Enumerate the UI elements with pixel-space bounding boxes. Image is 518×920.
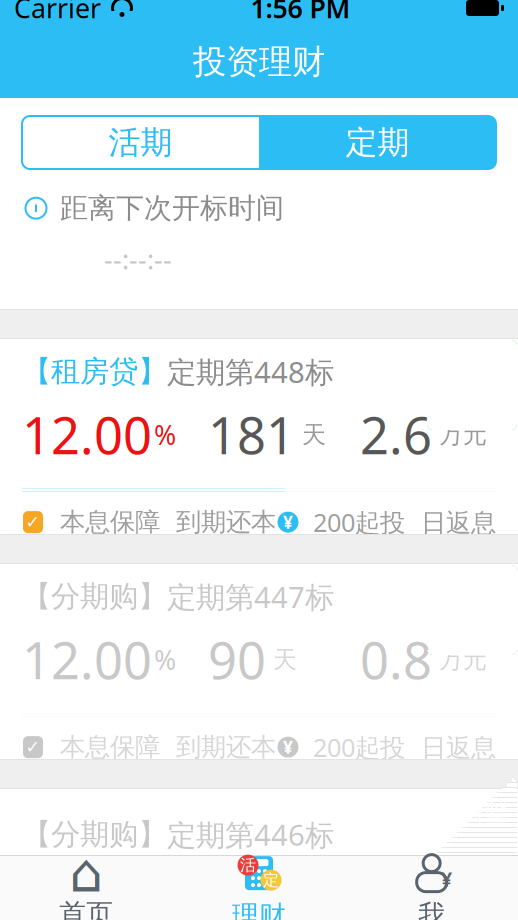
staticText: 天 bbox=[273, 645, 297, 674]
staticText: 投资理财 bbox=[193, 41, 325, 82]
staticText: ¥ bbox=[441, 866, 452, 892]
button[interactable]: 定期 bbox=[259, 116, 496, 169]
staticText: ¥ bbox=[283, 511, 293, 534]
button[interactable]: ⌂ bbox=[0, 855, 173, 920]
staticText: 2.6 bbox=[360, 401, 432, 468]
staticText: 90 bbox=[208, 626, 266, 693]
staticText: % bbox=[154, 642, 176, 677]
staticText: 距离下次开标时间 bbox=[60, 191, 284, 225]
staticText: % bbox=[154, 417, 176, 452]
staticText: ✓ bbox=[25, 737, 40, 757]
staticText: --:--:-- bbox=[104, 241, 172, 277]
staticText: 12.00 bbox=[22, 401, 152, 468]
staticText: 定期第446标 bbox=[167, 815, 334, 854]
button[interactable]: ¥ bbox=[345, 855, 518, 920]
button[interactable]: 活 bbox=[173, 855, 345, 920]
staticText: 定 bbox=[263, 870, 279, 890]
staticText: 万元 bbox=[439, 645, 487, 674]
button[interactable]: 活期 bbox=[22, 116, 259, 169]
staticText: 我 bbox=[418, 898, 445, 920]
staticText: 本息保障 到期还本 bbox=[44, 732, 276, 763]
staticText: ⌂ bbox=[69, 843, 103, 903]
staticText: 首页 bbox=[59, 897, 113, 920]
staticText: 181 bbox=[208, 401, 295, 468]
staticText: 12.00 bbox=[22, 626, 152, 693]
staticText: 【租房贷】 bbox=[22, 353, 167, 389]
staticText: 200起投 日返息 bbox=[299, 505, 496, 539]
staticText: ✓ bbox=[25, 512, 40, 532]
staticText: 定期 bbox=[345, 123, 409, 162]
button[interactable]: 【分期购】 bbox=[0, 564, 518, 759]
staticText: 活 bbox=[240, 855, 256, 875]
staticText: ¥ bbox=[283, 736, 293, 759]
staticText: Carrier bbox=[14, 0, 101, 26]
staticText: 天 bbox=[302, 420, 326, 449]
staticText: 【分期购】 bbox=[22, 816, 167, 852]
staticText: 0.8 bbox=[360, 626, 432, 693]
staticText: 定期第448标 bbox=[167, 352, 334, 391]
staticText: 1:56 PM bbox=[250, 0, 350, 26]
staticText: 活期 bbox=[108, 123, 172, 162]
button[interactable]: 【租房贷】 bbox=[0, 339, 518, 534]
staticText: 定期第447标 bbox=[167, 577, 334, 616]
staticText: 【分期购】 bbox=[22, 578, 167, 614]
button[interactable]: 【分期购】 bbox=[0, 789, 518, 855]
staticText: 理财 bbox=[232, 899, 286, 920]
staticText: 200起投 日返息 bbox=[299, 730, 496, 764]
staticText: 万元 bbox=[439, 420, 487, 449]
staticText: 本息保障 到期还本 bbox=[44, 507, 276, 538]
staticText: 售罄 bbox=[460, 796, 510, 827]
